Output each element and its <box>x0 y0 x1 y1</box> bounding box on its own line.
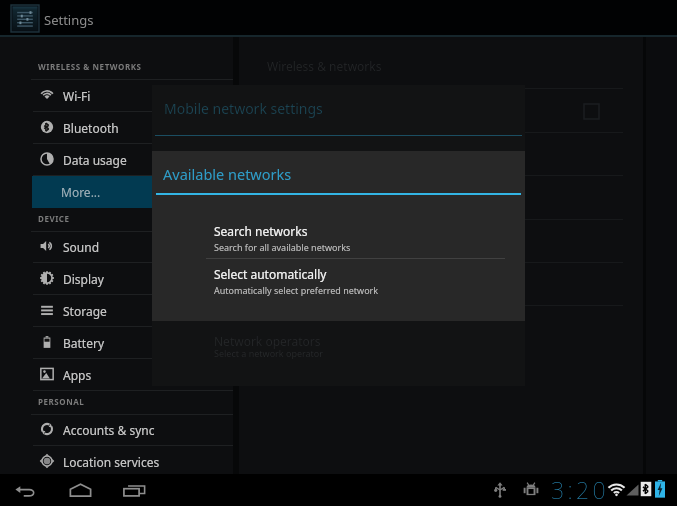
staticText: DEVICE <box>38 213 70 224</box>
staticText: Select a network operator <box>214 347 324 359</box>
staticText: Accounts & sync <box>63 422 155 438</box>
button[interactable]: Recent apps <box>112 474 156 506</box>
staticText: More... <box>61 184 101 200</box>
button[interactable]: Battery <box>0 327 235 359</box>
staticText: PERSONAL <box>38 396 85 407</box>
staticText: Automatically select preferred network <box>214 284 379 296</box>
button[interactable]: Location services <box>0 446 235 478</box>
staticText: Bluetooth <box>63 120 119 136</box>
staticText: Select automatically <box>214 266 327 282</box>
staticText: Available networks <box>163 164 292 184</box>
staticText: Location services <box>63 454 160 470</box>
button[interactable]: More... <box>32 176 235 208</box>
button[interactable]: Settings <box>11 5 39 32</box>
button[interactable]: Select automatically <box>152 261 525 304</box>
button[interactable]: Back <box>4 474 48 506</box>
staticText: 3:20 <box>551 474 609 505</box>
staticText: Search for all available networks <box>214 241 351 253</box>
button[interactable]: Wi-Fi <box>0 80 235 112</box>
button[interactable]: Search networks <box>152 218 525 261</box>
button[interactable]: Data usage <box>0 144 235 176</box>
staticText: Mobile network settings <box>164 99 323 118</box>
staticText: WIRELESS & NETWORKS <box>38 61 142 72</box>
staticText: Data usage <box>63 152 127 168</box>
button[interactable]: Display <box>0 263 235 295</box>
button[interactable]: Sound <box>0 231 235 263</box>
staticText: Wireless & networks <box>267 58 382 74</box>
staticText: Settings <box>44 11 94 29</box>
staticText: Search networks <box>214 223 308 239</box>
button[interactable]: Bluetooth <box>0 112 235 144</box>
staticText: Battery <box>63 335 105 351</box>
staticText: Network operators <box>214 333 321 349</box>
staticText: Display <box>63 271 104 287</box>
button[interactable]: Apps <box>0 359 235 391</box>
staticText: Wi-Fi <box>63 88 91 104</box>
staticText: Apps <box>63 367 92 383</box>
staticText: Sound <box>63 239 100 255</box>
button[interactable]: Home <box>58 474 102 506</box>
button[interactable]: Accounts & sync <box>0 414 235 446</box>
staticText: Storage <box>63 303 107 319</box>
button[interactable]: Storage <box>0 295 235 327</box>
